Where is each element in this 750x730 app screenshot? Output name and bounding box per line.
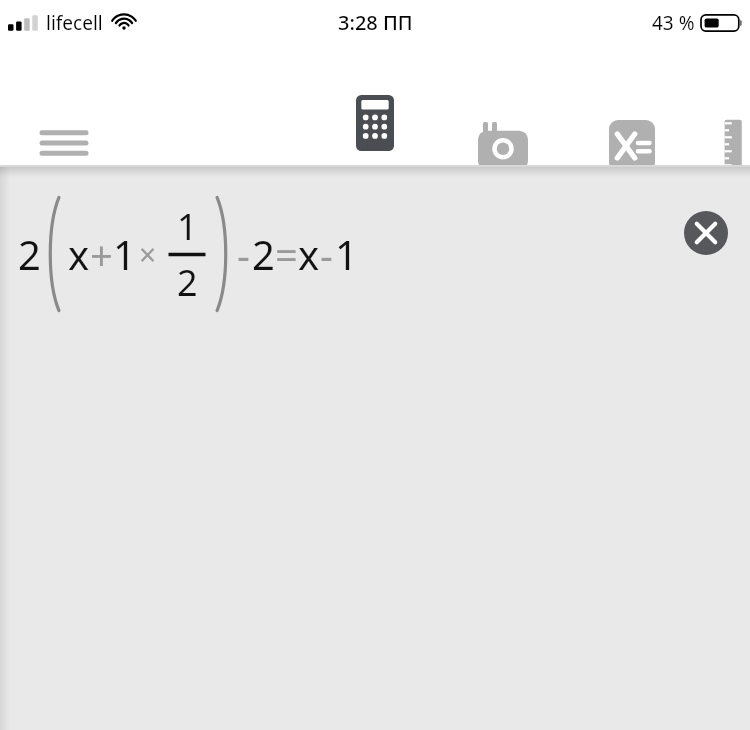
button[interactable]: Camera [467,115,539,177]
button[interactable]: Menu [30,119,98,167]
button[interactable]: Solve equation [596,115,668,177]
staticText: 2 [252,227,275,281]
staticText: = [275,227,298,281]
staticText: Изменить [325,159,426,188]
staticText: 2 [18,227,41,281]
staticText: × [139,234,157,275]
staticText: + [90,227,113,281]
staticText: 1 [335,227,358,281]
staticText: x [298,227,320,281]
staticText: 43 % [652,10,695,36]
staticText: 1 [177,202,198,251]
button[interactable]: Ruler [722,111,750,183]
button[interactable]: Close [684,211,728,255]
button[interactable]: Изменить [315,95,435,188]
staticText: 2 [177,258,198,307]
button[interactable]: 2 [18,189,358,319]
staticText: lifecell [46,10,103,36]
staticText: x [68,227,90,281]
staticText: 3:28 ПП [338,9,413,36]
staticText: 1 [113,227,136,281]
staticText: - [237,227,250,281]
staticText: - [320,227,333,281]
